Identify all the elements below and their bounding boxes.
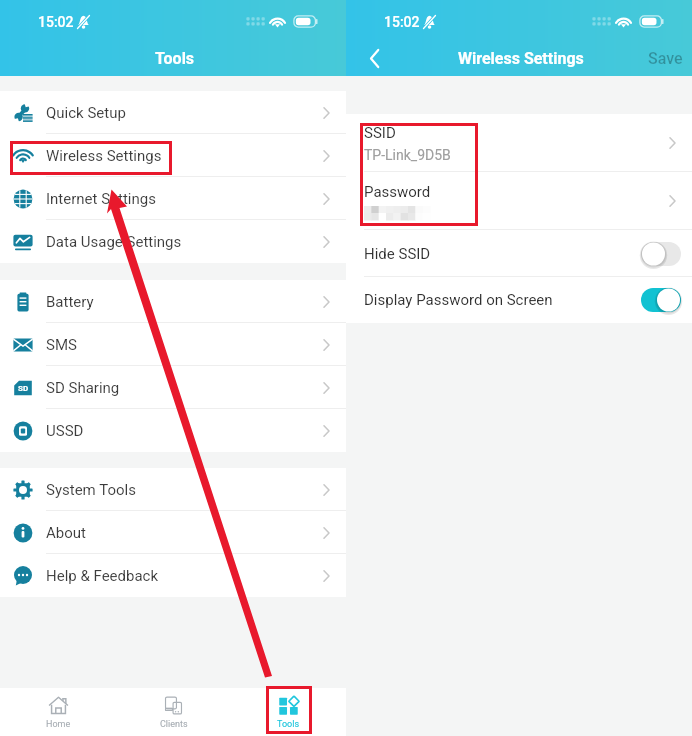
button[interactable]: Save — [648, 41, 692, 76]
staticText: Password — [364, 183, 431, 201]
button[interactable]: SMS — [0, 323, 346, 366]
button[interactable]: Display Password on Screen — [346, 277, 692, 323]
button[interactable]: Clients — [116, 688, 231, 736]
staticText: 15:02 — [384, 14, 420, 30]
staticText: Quick Setup — [46, 104, 126, 122]
button[interactable]: About — [0, 511, 346, 554]
staticText: Battery — [46, 293, 94, 311]
staticText: SD — [18, 384, 29, 393]
button[interactable]: Wireless Settings — [0, 134, 346, 177]
staticText: Data Usage Settings — [46, 233, 182, 251]
button[interactable]: Hide SSID — [346, 230, 692, 277]
staticText: About — [46, 524, 86, 542]
button[interactable]: System Tools — [0, 468, 346, 511]
staticText: Wireless Settings — [458, 49, 584, 68]
button[interactable]: SD — [0, 366, 346, 409]
button[interactable]: Hide SSID — [641, 240, 681, 268]
staticText: Home — [46, 719, 71, 730]
staticText: SMS — [46, 336, 77, 354]
button[interactable]: Data Usage Settings — [0, 220, 346, 263]
button[interactable]: Password — [346, 172, 692, 230]
staticText: Tools — [277, 719, 300, 730]
staticText: Save — [648, 49, 683, 68]
button[interactable]: Back — [346, 41, 396, 76]
staticText: TP-Link_9D5B — [364, 147, 451, 163]
button[interactable]: Home — [0, 688, 116, 736]
staticText: 15:02 — [38, 14, 74, 30]
staticText: Wireless Settings — [46, 147, 162, 165]
button[interactable]: USSD — [0, 409, 346, 452]
staticText: Help & Feedback — [46, 567, 159, 585]
staticText: Display Password on Screen — [364, 291, 641, 309]
staticText: Clients — [160, 719, 188, 730]
staticText: Hide SSID — [364, 245, 641, 263]
staticText: SD Sharing — [46, 379, 120, 397]
button[interactable]: Battery — [0, 280, 346, 323]
button[interactable]: Internet Settings — [0, 177, 346, 220]
staticText: System Tools — [46, 481, 136, 499]
button[interactable]: SSID — [346, 114, 692, 172]
staticText: Tools — [155, 49, 195, 68]
staticText: SSID — [364, 124, 396, 142]
staticText: Internet Settings — [46, 190, 156, 208]
button[interactable]: Quick Setup — [0, 91, 346, 134]
button[interactable]: Help & Feedback — [0, 554, 346, 597]
staticText: USSD — [46, 422, 84, 440]
button[interactable]: Tools — [231, 688, 346, 736]
button[interactable]: Display Password on Screen — [641, 286, 681, 314]
